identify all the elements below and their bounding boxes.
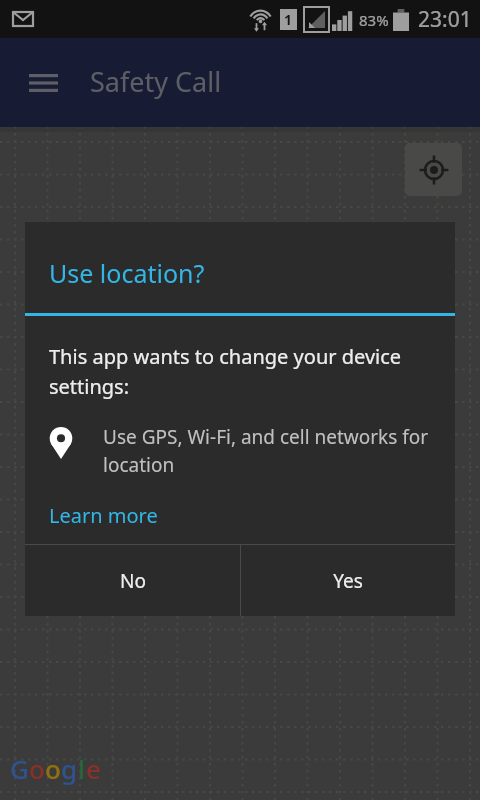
staticText: 1	[284, 10, 293, 29]
staticText: o	[45, 751, 61, 786]
button[interactable]: Open navigation menu	[20, 60, 66, 106]
staticText: 83%	[359, 10, 389, 30]
staticText: 23:01	[418, 5, 472, 34]
button[interactable]: Learn more	[49, 502, 158, 529]
staticText: No	[120, 568, 146, 594]
staticText: G	[10, 751, 29, 786]
staticText: Learn more	[49, 502, 158, 529]
staticText: o	[29, 751, 45, 786]
staticText: Safety Call	[90, 63, 222, 100]
staticText: This app wants to change your device set…	[49, 343, 435, 400]
staticText: Yes	[333, 568, 363, 594]
button[interactable]: Yes	[241, 545, 455, 616]
staticText: e	[86, 751, 101, 786]
button[interactable]: My location	[405, 143, 462, 196]
staticText: Use location?	[49, 256, 205, 290]
button[interactable]: No	[25, 545, 240, 616]
staticText: l	[78, 751, 86, 786]
staticText: g	[61, 751, 78, 786]
staticText: Use GPS, Wi-Fi, and cell networks for lo…	[103, 424, 435, 478]
